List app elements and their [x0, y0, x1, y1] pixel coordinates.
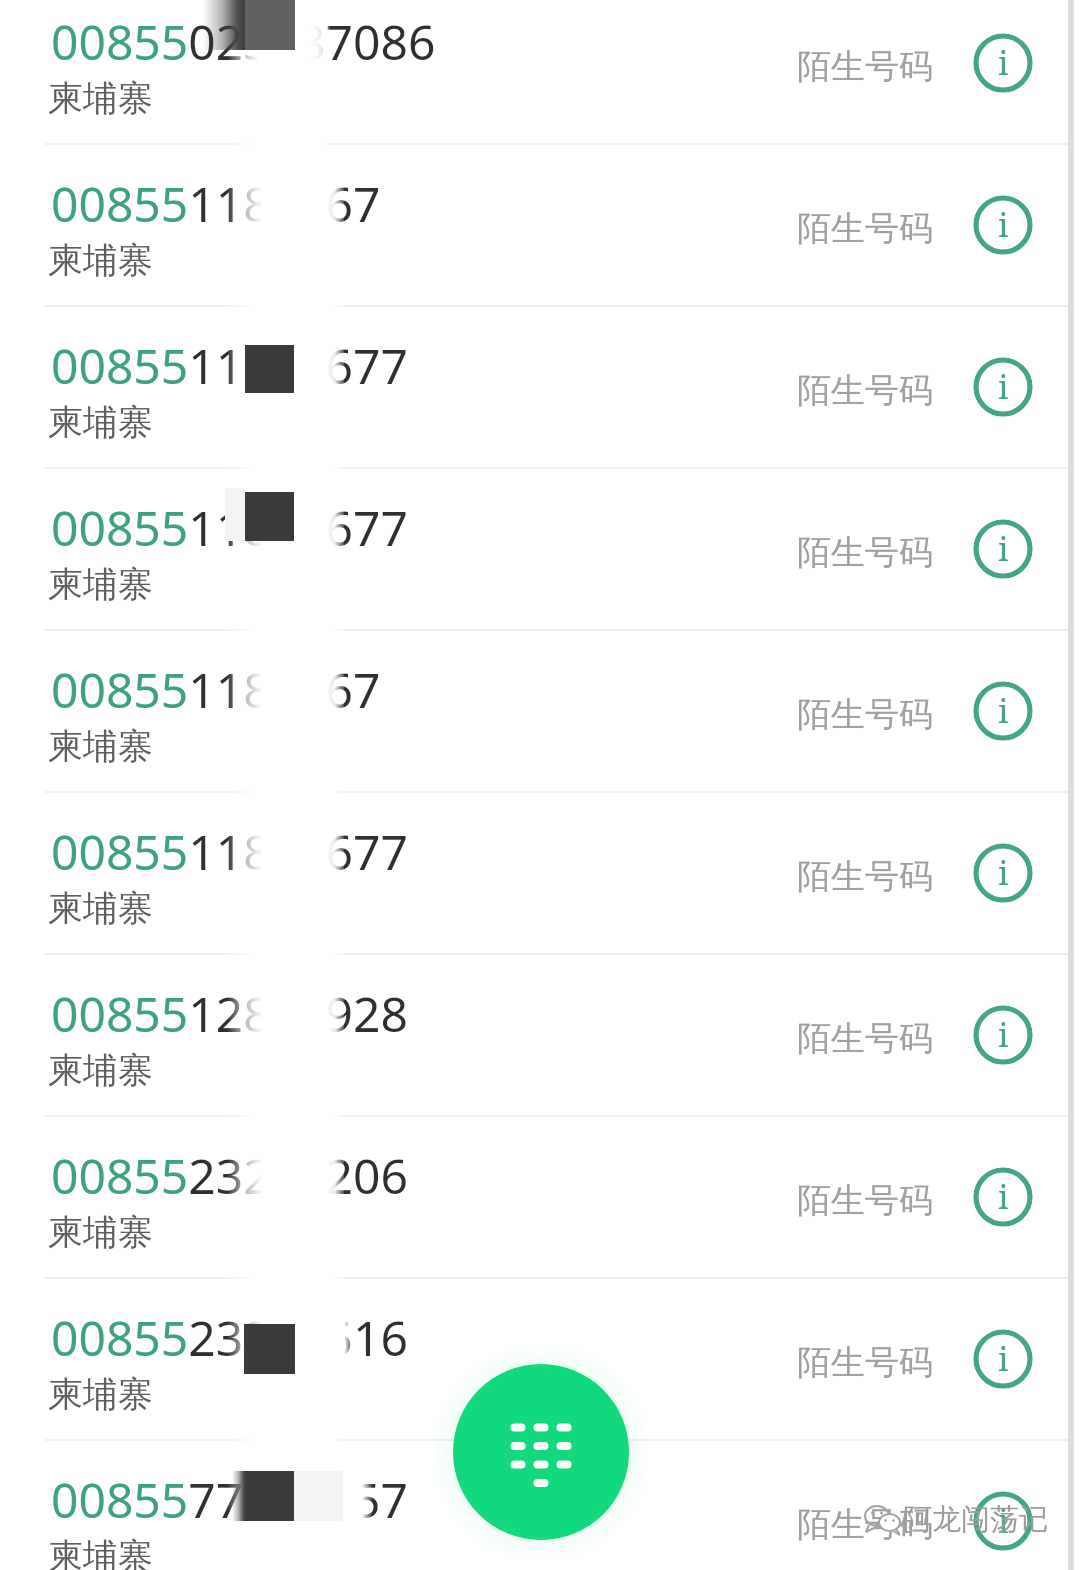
button[interactable]: 0085523288206	[0, 1134, 1080, 1296]
button[interactable]: Number info	[973, 1167, 1033, 1227]
staticText: 柬埔寨	[48, 886, 153, 930]
staticText: 008551188567	[51, 171, 381, 236]
staticText: 陌生号码	[797, 1017, 933, 1060]
staticText: 陌生号码	[797, 531, 933, 574]
staticText: 柬埔寨	[48, 1210, 153, 1254]
staticText: i	[998, 526, 1009, 571]
staticText: 0085523288206	[51, 1143, 408, 1208]
staticText: 柬埔寨	[48, 1534, 153, 1570]
button[interactable]: Number info	[973, 1491, 1033, 1551]
staticText: i	[998, 364, 1009, 409]
staticText: 008551188567	[51, 657, 381, 722]
button[interactable]: Number info	[973, 33, 1033, 93]
staticText: 0085523288516	[51, 1305, 408, 1370]
button[interactable]: 00855023187086	[0, 0, 1080, 162]
staticText: 0085512885928	[51, 981, 408, 1046]
staticText: i	[998, 1498, 1009, 1543]
staticText: 0085511885677	[51, 495, 408, 560]
staticText: 陌生号码	[797, 45, 933, 88]
button[interactable]: Number info	[973, 681, 1033, 741]
button[interactable]: Number info	[973, 195, 1033, 255]
staticText: 柬埔寨	[48, 238, 153, 282]
staticText: 0085511885677	[51, 333, 408, 398]
staticText: i	[998, 1174, 1009, 1219]
staticText: i	[998, 850, 1009, 895]
button[interactable]: Number info	[973, 1329, 1033, 1389]
staticText: 柬埔寨	[48, 400, 153, 444]
staticText: 柬埔寨	[48, 1048, 153, 1092]
staticText: 陌生号码	[797, 369, 933, 412]
staticText: 0085577588557	[51, 1467, 408, 1532]
button[interactable]: 0085511885677	[0, 486, 1080, 648]
staticText: 阿龙闯荡记	[903, 1501, 1048, 1538]
button[interactable]: 008551188567	[0, 162, 1080, 324]
button[interactable]: Number info	[973, 519, 1033, 579]
button[interactable]: 008551188567	[0, 648, 1080, 810]
button[interactable]: 0085512885928	[0, 972, 1080, 1134]
button[interactable]: Dial pad	[453, 1364, 629, 1540]
staticText: i	[998, 688, 1009, 733]
staticText: 陌生号码	[797, 207, 933, 250]
staticText: 0085511885677	[51, 819, 408, 884]
button[interactable]: 0085523288516	[0, 1296, 1080, 1458]
staticText: i	[998, 1336, 1009, 1381]
staticText: 陌生号码	[797, 855, 933, 898]
staticText: 陌生号码	[797, 1179, 933, 1222]
staticText: 陌生号码	[797, 693, 933, 736]
button[interactable]: 0085577588557	[0, 1458, 1080, 1570]
button[interactable]: 0085511885677	[0, 324, 1080, 486]
staticText: 陌生号码	[797, 1341, 933, 1384]
button[interactable]: 0085511885677	[0, 810, 1080, 972]
staticText: i	[998, 1012, 1009, 1057]
staticText: i	[998, 202, 1009, 247]
button[interactable]: Number info	[973, 1005, 1033, 1065]
staticText: 00855023187086	[51, 9, 436, 74]
button[interactable]: Number info	[973, 357, 1033, 417]
button[interactable]: Number info	[973, 843, 1033, 903]
staticText: i	[998, 40, 1009, 85]
staticText: 柬埔寨	[48, 1372, 153, 1416]
staticText: 柬埔寨	[48, 724, 153, 768]
staticText: 陌生号码	[797, 1503, 933, 1546]
staticText: 柬埔寨	[48, 562, 153, 606]
staticText: 柬埔寨	[48, 76, 153, 120]
